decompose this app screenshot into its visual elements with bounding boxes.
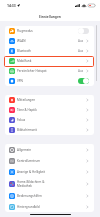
staticText: Bildschirmzeit (17, 128, 37, 132)
button[interactable]: Töne & Haptik (5, 105, 94, 115)
staticText: Mobilfunk (17, 59, 32, 63)
staticText: Allgemein (17, 148, 32, 152)
button[interactable]: Bildschirmzeit (5, 125, 94, 135)
button[interactable]: Aus (78, 28, 89, 34)
button[interactable]: VPN (5, 76, 94, 86)
staticText: Mitteilungen (17, 98, 36, 102)
staticText: Bluetooth (17, 49, 31, 53)
staticText: 14:33 (7, 3, 16, 8)
staticText: Kontrollzentrum (17, 159, 41, 163)
button[interactable]: Allgemein (5, 144, 94, 155)
staticText: Fokus (17, 118, 26, 122)
button[interactable]: Mobilfunk (5, 56, 94, 66)
staticText: Flugmodus (17, 29, 33, 33)
staticText: Einstellungen (39, 14, 61, 18)
staticText: VPN (17, 79, 23, 83)
button[interactable]: Home-Bildschirm & (5, 177, 94, 190)
button[interactable]: Mitteilungen (5, 95, 94, 105)
staticText: Home-Bildschirm & (17, 180, 45, 184)
staticText: Mediathek (17, 184, 32, 188)
button[interactable]: Bluetooth (5, 46, 94, 56)
button[interactable]: Fokus (5, 115, 94, 125)
button[interactable]: Hintergrundbild (5, 201, 94, 212)
button[interactable]: Anzeige & Helligkeit (5, 166, 94, 177)
button[interactable]: Bedienungshilfen (5, 190, 94, 201)
button[interactable]: Ein (78, 78, 89, 84)
staticText: Aus (78, 39, 84, 43)
button[interactable]: WLAN (5, 36, 94, 46)
button[interactable]: Kontrollzentrum (5, 155, 94, 166)
staticText: WLAN (17, 39, 26, 43)
staticText: Bedienungshilfen (17, 194, 42, 198)
staticText: Aus (78, 69, 84, 73)
staticText: Töne & Haptik (17, 108, 37, 112)
staticText: Anzeige & Helligkeit (17, 170, 46, 174)
button[interactable]: Flugmodus (5, 26, 94, 36)
button[interactable]: Persönlicher Hotspot (5, 66, 94, 76)
staticText: Persönlicher Hotspot (17, 69, 47, 73)
staticText: Aus (78, 49, 84, 53)
staticText: Hintergrundbild (17, 205, 40, 209)
